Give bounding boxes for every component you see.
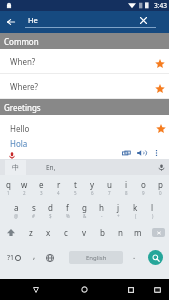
button[interactable]: q: [0, 175, 16, 198]
staticText: 7: [108, 190, 111, 196]
button[interactable]: .: [126, 244, 142, 271]
button[interactable]: x: [39, 221, 57, 244]
staticText: v: [82, 227, 87, 238]
staticText: 3:43: [154, 1, 167, 10]
staticText: d: [48, 202, 53, 213]
staticText: j: [117, 202, 120, 213]
staticText: 1: [7, 190, 10, 196]
staticText: &: [83, 213, 87, 219]
staticText: 中: [12, 163, 19, 172]
button[interactable]: d: [42, 198, 59, 221]
button[interactable]: Search: [148, 250, 163, 265]
button[interactable]: t: [67, 175, 84, 198]
button[interactable]: Back: [22, 279, 50, 300]
button[interactable]: w: [16, 175, 33, 198]
staticText: m: [134, 227, 142, 238]
staticText: t: [74, 179, 77, 190]
button[interactable]: n: [111, 221, 129, 244]
staticText: He: [28, 15, 38, 25]
staticText: Greetings: [4, 102, 41, 113]
staticText: $: [49, 213, 52, 219]
staticText: b: [100, 227, 105, 238]
staticText: x: [46, 227, 51, 238]
staticText: 0: [159, 190, 162, 196]
button[interactable]: ,: [26, 244, 42, 271]
staticText: 2: [23, 190, 26, 196]
staticText: Where?: [10, 81, 39, 92]
staticText: s: [32, 202, 36, 213]
staticText: English: [86, 254, 107, 262]
staticText: #: [32, 213, 35, 219]
staticText: Common: [4, 36, 39, 47]
button[interactable]: English: [69, 251, 123, 264]
button[interactable]: Change language: [42, 244, 58, 271]
staticText: g: [82, 202, 87, 213]
button[interactable]: Copy: [120, 147, 132, 159]
button[interactable]: f: [59, 198, 76, 221]
staticText: n: [118, 227, 123, 238]
button[interactable]: h: [93, 198, 110, 221]
staticText: u: [107, 179, 112, 190]
button[interactable]: Where?: [0, 74, 169, 99]
button[interactable]: v: [75, 221, 93, 244]
button[interactable]: i: [118, 175, 135, 198]
button[interactable]: e: [33, 175, 50, 198]
staticText: Hola: [10, 138, 28, 149]
staticText: Hello: [10, 123, 30, 134]
button[interactable]: Back: [0, 11, 22, 33]
staticText: c: [64, 227, 68, 238]
button[interactable]: Clear search: [135, 12, 152, 29]
button[interactable]: More options: [150, 147, 162, 159]
staticText: 6: [91, 190, 94, 196]
button[interactable]: Listen: [136, 147, 148, 159]
button[interactable]: p: [152, 175, 169, 198]
button[interactable]: Symbols: [0, 244, 27, 271]
staticText: w: [21, 179, 28, 190]
button[interactable]: l: [144, 198, 161, 221]
button[interactable]: Backspace: [147, 221, 169, 244]
staticText: o: [141, 179, 146, 190]
staticText: 4: [57, 190, 60, 196]
button[interactable]: 中: [5, 160, 26, 175]
button[interactable]: b: [93, 221, 111, 244]
staticText: k: [133, 202, 138, 213]
staticText: f: [66, 202, 69, 213]
staticText: z: [29, 227, 33, 238]
button[interactable]: Voice input: [155, 159, 167, 175]
button[interactable]: o: [135, 175, 152, 198]
button[interactable]: Hello: [0, 115, 169, 159]
button[interactable]: y: [84, 175, 101, 198]
button[interactable]: En,: [40, 159, 62, 175]
staticText: .: [133, 250, 136, 261]
staticText: 5: [74, 190, 77, 196]
button[interactable]: j: [110, 198, 127, 221]
staticText: a: [14, 202, 19, 213]
staticText: When?: [10, 56, 36, 67]
button[interactable]: c: [57, 221, 75, 244]
button[interactable]: Shift: [0, 221, 22, 244]
button[interactable]: Home: [70, 279, 98, 300]
button[interactable]: u: [101, 175, 118, 198]
staticText: %: [66, 213, 70, 219]
button[interactable]: m: [129, 221, 147, 244]
staticText: y: [90, 179, 95, 190]
staticText: +: [117, 213, 120, 219]
staticText: En,: [46, 163, 56, 172]
staticText: r: [57, 179, 61, 190]
button[interactable]: g: [76, 198, 93, 221]
button[interactable]: Switch keyboard: [146, 279, 168, 300]
button[interactable]: When?: [0, 49, 169, 74]
button[interactable]: z: [22, 221, 39, 244]
staticText: q: [6, 179, 11, 190]
staticText: ): [152, 213, 154, 219]
staticText: ,: [33, 250, 36, 261]
staticText: @: [14, 213, 19, 219]
button[interactable]: a: [8, 198, 25, 221]
staticText: (: [135, 213, 137, 219]
button[interactable]: Recents: [117, 279, 145, 300]
button[interactable]: k: [127, 198, 144, 221]
staticText: i: [125, 179, 128, 190]
button[interactable]: r: [50, 175, 67, 198]
button[interactable]: s: [25, 198, 42, 221]
staticText: ?1: [7, 253, 15, 263]
